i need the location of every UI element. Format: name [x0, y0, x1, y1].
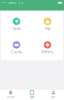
- staticText: Scan: [29, 95, 34, 99]
- button[interactable]: Me: [43, 90, 64, 99]
- button[interactable]: Scan: [21, 90, 43, 99]
- staticText: Home: [7, 95, 15, 99]
- button[interactable]: Home: [0, 90, 21, 99]
- staticText: Offers: [41, 49, 53, 54]
- button[interactable]: Pay: [32, 18, 63, 31]
- staticText: Scan: [12, 25, 20, 31]
- staticText: Pay: [44, 25, 50, 31]
- button[interactable]: Cards: [1, 41, 32, 54]
- staticText: Cards: [11, 49, 22, 54]
- button[interactable]: Scan: [1, 18, 32, 31]
- button[interactable]: Offers: [32, 41, 63, 54]
- staticText: •••• Carrier 9:41: [1, 1, 25, 4]
- staticText: Me: [51, 95, 55, 99]
